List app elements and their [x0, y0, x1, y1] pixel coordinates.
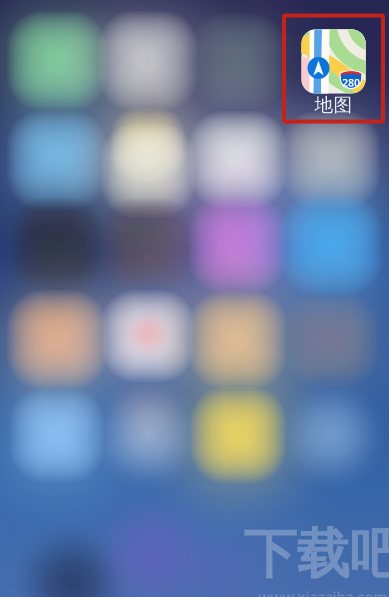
staticText: 地图	[314, 93, 352, 116]
staticText: 下载吧	[243, 521, 389, 587]
staticText: 280	[342, 76, 360, 90]
button[interactable]: 280	[284, 15, 383, 121]
staticText: www.xiazaiba.com	[258, 587, 387, 597]
